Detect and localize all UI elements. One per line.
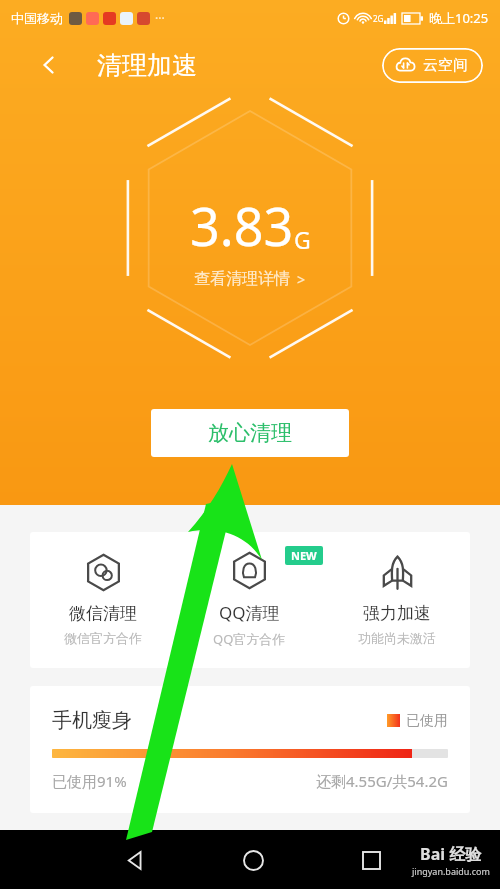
staticText: 晚上10:25	[429, 9, 489, 27]
staticText: QQ官方合作	[213, 630, 286, 648]
staticText: Bai 经验	[420, 843, 482, 865]
staticText: 功能尚未激活	[358, 630, 436, 646]
button[interactable]: 放心清理	[151, 409, 349, 457]
staticText: ···	[155, 10, 165, 26]
staticText: jingyan.baidu.com	[412, 865, 490, 877]
staticText: 还剩4.55G/共54.2G	[316, 771, 448, 791]
staticText: >	[297, 270, 306, 289]
button[interactable]: 查看清理详情	[194, 269, 306, 289]
staticText: 微信清理	[69, 603, 137, 624]
staticText: 3.83	[190, 190, 294, 261]
staticText: 已使用91%	[52, 771, 127, 791]
staticText: 放心清理	[208, 420, 292, 446]
staticText: 云空间	[423, 56, 468, 75]
button[interactable]: Back	[110, 835, 160, 885]
staticText: 手机瘦身	[52, 708, 132, 733]
button[interactable]: 强力加速	[323, 532, 470, 668]
button[interactable]: Back	[28, 44, 70, 86]
button[interactable]: QQ清理	[176, 532, 323, 668]
staticText: 清理加速	[97, 50, 197, 81]
button[interactable]: Home	[228, 835, 278, 885]
staticText: 已使用	[406, 712, 448, 730]
staticText: 2G	[373, 13, 384, 24]
staticText: 强力加速	[363, 603, 431, 624]
button[interactable]: Recent apps	[346, 835, 396, 885]
button[interactable]: 微信清理	[30, 532, 176, 668]
button[interactable]: 云空间	[382, 48, 483, 83]
staticText: 微信官方合作	[64, 630, 142, 646]
button[interactable]: 手机瘦身	[30, 686, 470, 813]
staticText: QQ清理	[219, 601, 280, 624]
staticText: 中国移动	[11, 10, 63, 26]
staticText: NEW	[291, 548, 317, 563]
staticText: 查看清理详情	[194, 269, 290, 289]
staticText: G	[294, 224, 311, 255]
